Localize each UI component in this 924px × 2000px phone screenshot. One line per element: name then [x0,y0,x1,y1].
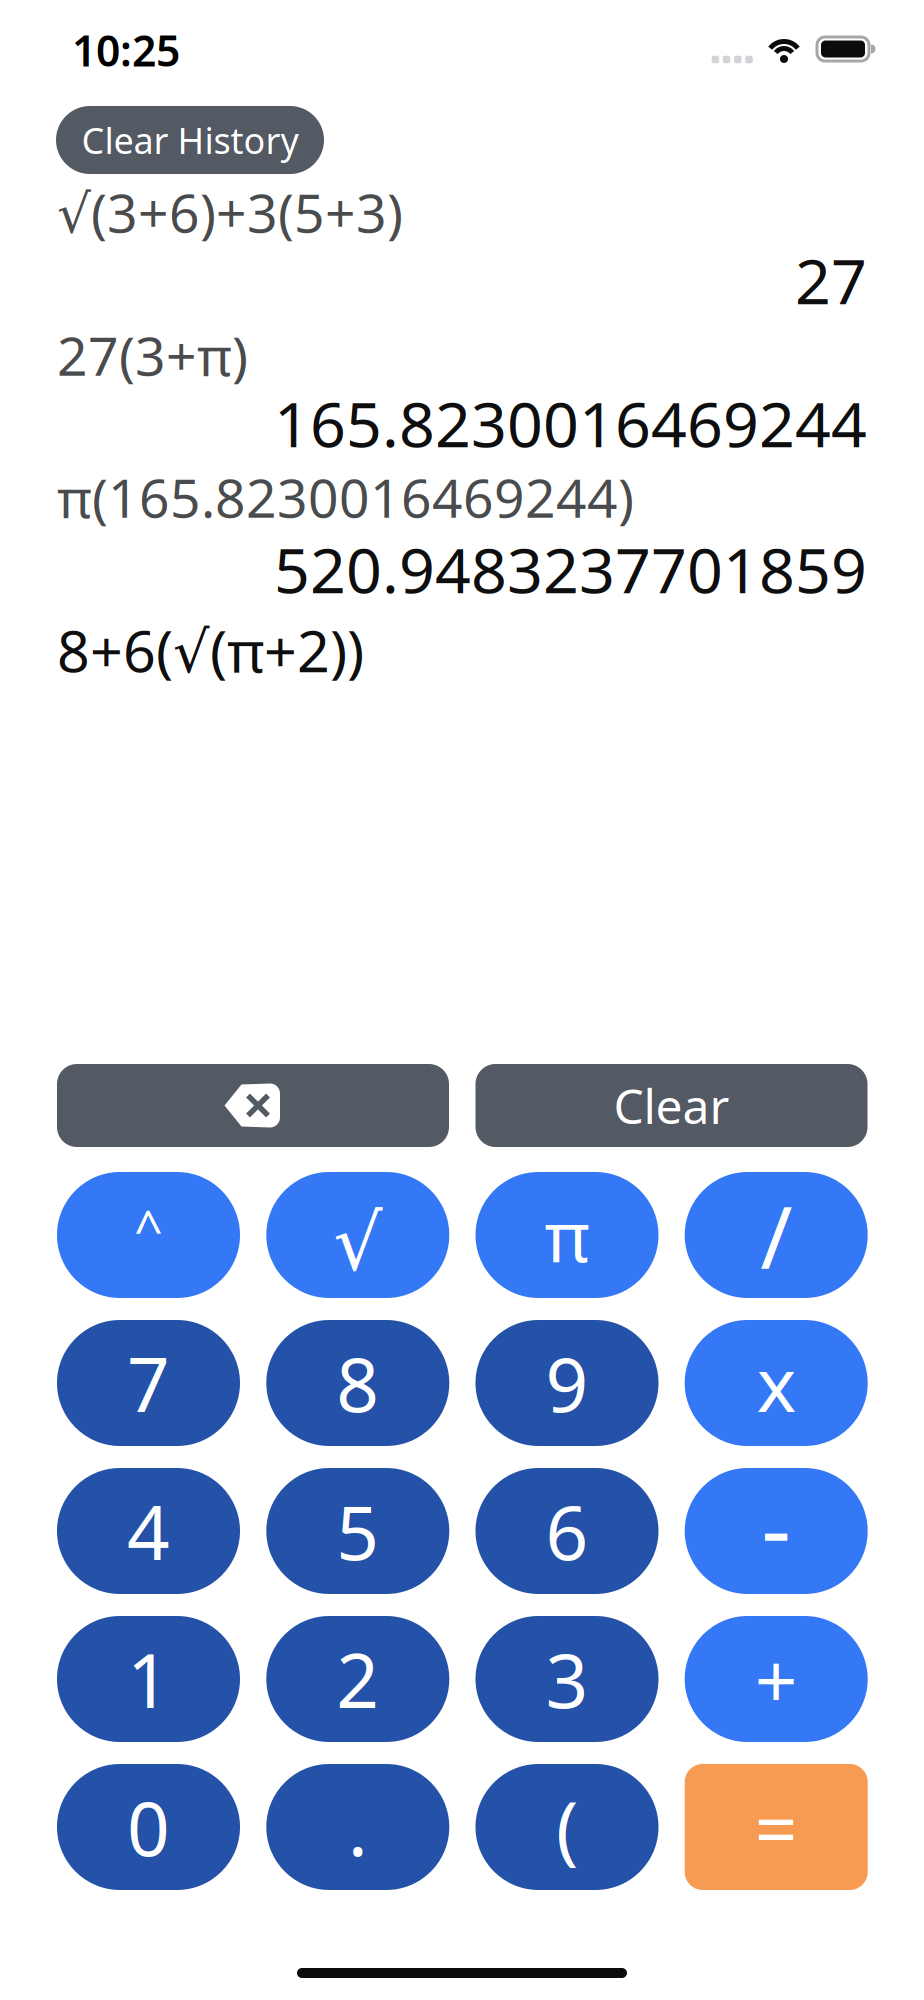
staticText: 2 [336,1629,379,1729]
staticText: 4 [127,1481,170,1581]
button[interactable]: 8 [266,1320,449,1446]
button[interactable]: / [685,1172,868,1298]
button[interactable]: 1 [57,1616,240,1742]
button[interactable]: π [475,1172,658,1298]
staticText: ^ [134,1194,163,1262]
staticText: 10:25 [72,22,180,78]
button[interactable]: 5 [266,1468,449,1594]
button[interactable]: 0 [57,1764,240,1890]
staticText: 520.9483237701859 [274,527,867,611]
staticText: 3 [545,1629,588,1729]
staticText: x [757,1333,796,1433]
staticText: 9 [545,1333,588,1433]
button[interactable]: . [266,1764,449,1890]
button[interactable]: 9 [475,1320,658,1446]
button[interactable]: Clear [475,1064,867,1147]
staticText: 0 [127,1777,170,1877]
button[interactable]: - [685,1468,868,1594]
button[interactable]: ^ [57,1172,240,1298]
staticText: √(3+6)+3(5+3) [57,177,403,247]
button[interactable]: 3 [475,1616,658,1742]
staticText: ( [556,1777,578,1877]
staticText: 8+6(√(π+2)) [57,612,364,688]
staticText: √ [333,1199,382,1287]
staticText: + [755,1629,798,1729]
staticText: 1 [127,1629,170,1729]
button[interactable]: 6 [475,1468,658,1594]
button[interactable]: 7 [57,1320,240,1446]
staticText: - [761,1465,791,1587]
button[interactable]: √ [266,1172,449,1298]
staticText: π(165.8230016469244) [57,462,634,532]
staticText: 27 [795,238,867,322]
button[interactable]: Clear History [56,106,324,174]
staticText: 6 [545,1481,588,1581]
staticText: 165.8230016469244 [274,381,867,465]
button[interactable]: 2 [266,1616,449,1742]
button[interactable]: + [685,1616,868,1742]
button[interactable]: = [685,1764,868,1890]
staticText: = [755,1777,798,1877]
staticText: Clear [613,1074,729,1137]
staticText: 5 [336,1481,379,1581]
staticText: 8 [336,1333,379,1433]
staticText: 27(3+π) [57,320,248,390]
button[interactable]: x [685,1320,868,1446]
staticText: . [348,1777,368,1877]
staticText: / [760,1177,792,1293]
staticText: Clear History [81,116,298,164]
button[interactable]: 4 [57,1468,240,1594]
staticText: 7 [127,1333,170,1433]
button[interactable]: Delete [57,1064,449,1147]
button[interactable]: ( [475,1764,658,1890]
staticText: π [544,1189,589,1281]
